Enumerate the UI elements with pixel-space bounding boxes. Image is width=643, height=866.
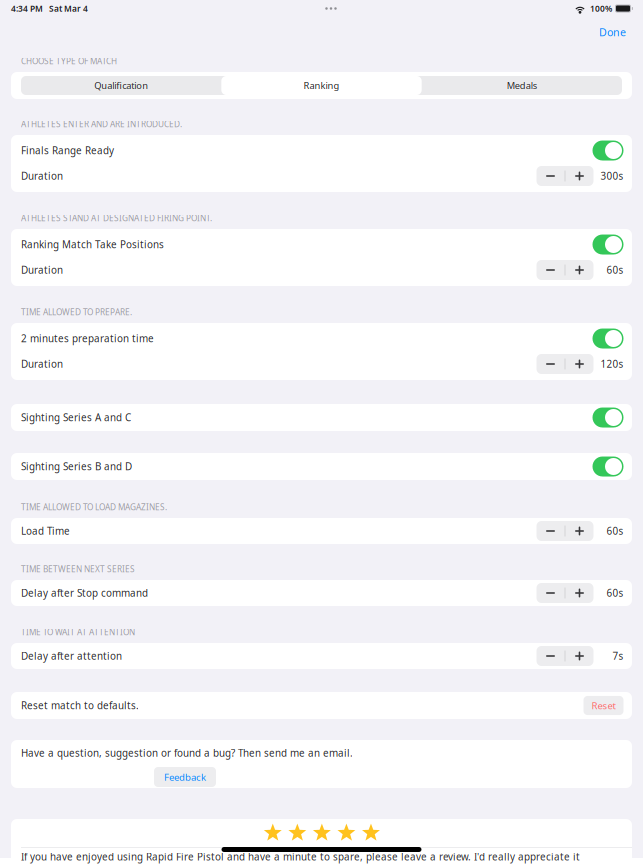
staticText: Delay after attention	[21, 649, 122, 663]
staticText: Reset match to defaults.	[21, 699, 139, 712]
staticText: CHOOSE TYPE OF MATCH	[21, 55, 117, 67]
button[interactable]: Decrease	[536, 260, 564, 280]
staticText: Medals	[507, 79, 537, 92]
staticText: Delay after Stop command	[21, 586, 148, 600]
staticText: Done	[599, 25, 626, 39]
staticText: Sighting Series A and C	[21, 411, 131, 424]
staticText: 300s	[600, 169, 623, 183]
staticText: 60s	[606, 263, 623, 277]
staticText: 2 minutes preparation time	[21, 332, 154, 345]
staticText: Ranking	[303, 79, 339, 92]
button[interactable]: Toggle	[592, 140, 623, 160]
staticText: Qualification	[94, 79, 148, 92]
staticText: 120s	[600, 357, 623, 371]
staticText: 100%	[590, 3, 612, 14]
staticText: Feedback	[164, 770, 206, 784]
button[interactable]: Increase	[565, 354, 593, 374]
staticText: ATHLETES STAND AT DESIGNATED FIRING POIN…	[21, 212, 212, 224]
staticText: TIME ALLOWED TO PREPARE.	[21, 306, 132, 318]
button[interactable]: Toggle	[592, 234, 623, 254]
button[interactable]: Increase	[565, 521, 593, 541]
staticText: 60s	[606, 586, 623, 600]
button[interactable]: Toggle	[592, 407, 623, 427]
button[interactable]: Feedback	[154, 767, 216, 787]
staticText: ATHLETES ENTER AND ARE INTRODUCED.	[21, 118, 182, 130]
staticText: 4:34 PM	[11, 3, 43, 14]
button[interactable]: Reset	[583, 696, 623, 715]
button[interactable]: Decrease	[536, 583, 564, 603]
button[interactable]: Medals	[422, 76, 622, 95]
button[interactable]: Decrease	[536, 646, 564, 666]
staticText: Sat Mar 4	[49, 3, 88, 14]
staticText: If you have enjoyed using Rapid Fire Pis…	[21, 850, 580, 863]
button[interactable]: Ranking	[221, 76, 422, 95]
button[interactable]: Done	[591, 20, 634, 44]
button[interactable]: Toggle	[592, 328, 623, 348]
staticText: Load Time	[21, 524, 70, 538]
staticText: Have a question, suggestion or found a b…	[21, 746, 353, 760]
staticText: Duration	[21, 357, 63, 371]
staticText: TIME ALLOWED TO LOAD MAGAZINES.	[21, 501, 167, 513]
staticText: TIME BETWEEN NEXT SERIES	[21, 563, 135, 575]
button[interactable]: Qualification	[21, 76, 221, 95]
staticText: Ranking Match Take Positions	[21, 238, 164, 251]
button[interactable]: Decrease	[536, 521, 564, 541]
staticText: Finals Range Ready	[21, 144, 114, 157]
button[interactable]: Toggle	[592, 456, 623, 476]
button[interactable]: Increase	[565, 166, 593, 186]
staticText: Sighting Series B and D	[21, 460, 132, 473]
staticText: Reset	[591, 699, 615, 712]
button[interactable]: Decrease	[536, 354, 564, 374]
staticText: Duration	[21, 263, 63, 277]
button[interactable]: Increase	[565, 260, 593, 280]
staticText: TIME TO WAIT AT ATTENTION	[21, 626, 135, 638]
staticText: 7s	[612, 649, 623, 663]
button[interactable]: Increase	[565, 583, 593, 603]
button[interactable]: Decrease	[536, 166, 564, 186]
button[interactable]: Rate five stars	[11, 819, 632, 847]
staticText: 60s	[606, 524, 623, 538]
button[interactable]: Increase	[565, 646, 593, 666]
staticText: Duration	[21, 169, 63, 183]
